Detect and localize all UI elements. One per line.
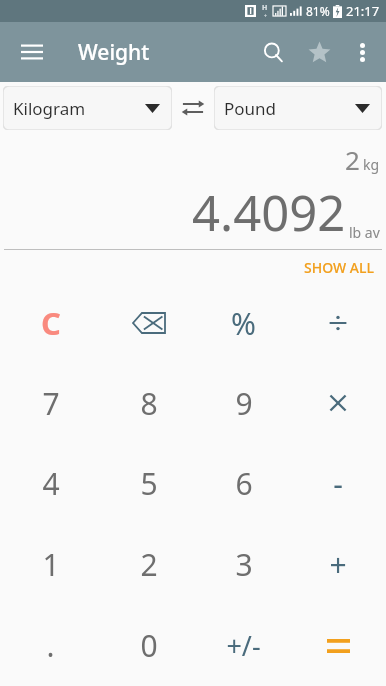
staticText: 1 bbox=[42, 544, 60, 585]
button[interactable]: 5 bbox=[101, 443, 197, 524]
button[interactable]: Open navigation menu bbox=[12, 32, 52, 72]
button[interactable]: + bbox=[290, 524, 386, 605]
button[interactable]: Multiply bbox=[290, 363, 386, 443]
staticText: + bbox=[329, 544, 347, 585]
staticText: . bbox=[46, 625, 55, 666]
button[interactable]: Equals bbox=[290, 605, 386, 686]
button[interactable]: % bbox=[197, 283, 290, 363]
button[interactable]: Backspace bbox=[101, 283, 197, 363]
staticText: 3 bbox=[235, 544, 253, 585]
button[interactable]: 0 bbox=[101, 605, 197, 686]
button[interactable]: 3 bbox=[197, 524, 290, 605]
staticText: 81% bbox=[306, 3, 330, 19]
staticText: + bbox=[264, 13, 267, 20]
staticText: 9 bbox=[235, 383, 253, 424]
staticText: 2 bbox=[345, 142, 360, 177]
button[interactable]: . bbox=[0, 605, 101, 686]
staticText: 0 bbox=[140, 625, 158, 666]
staticText: - bbox=[333, 463, 343, 504]
button[interactable]: Divide bbox=[290, 283, 386, 363]
staticText: lb av bbox=[349, 223, 380, 242]
staticText: +/- bbox=[226, 627, 261, 664]
button[interactable]: +/- bbox=[197, 605, 290, 686]
button[interactable]: 2 bbox=[101, 524, 197, 605]
staticText: 21:17 bbox=[346, 2, 380, 20]
button[interactable]: SHOW ALL bbox=[304, 258, 374, 277]
staticText: Pound bbox=[224, 97, 277, 120]
staticText: 2 bbox=[140, 544, 158, 585]
staticText: Weight bbox=[78, 38, 150, 67]
staticText: 8 bbox=[140, 383, 158, 424]
staticText: SHOW ALL bbox=[304, 258, 374, 277]
button[interactable]: Kilogram bbox=[3, 86, 172, 130]
staticText: 4.4092 bbox=[192, 179, 346, 246]
button[interactable]: 9 bbox=[197, 363, 290, 443]
button[interactable]: Pound bbox=[214, 86, 382, 130]
button[interactable]: More options bbox=[342, 32, 382, 72]
staticText: 5 bbox=[140, 463, 158, 504]
button[interactable]: 7 bbox=[0, 363, 101, 443]
staticText: 7 bbox=[42, 383, 60, 424]
button[interactable]: 6 bbox=[197, 443, 290, 524]
button[interactable]: 4 bbox=[0, 443, 101, 524]
staticText: C bbox=[41, 302, 61, 344]
staticText: 6 bbox=[235, 463, 253, 504]
staticText: Kilogram bbox=[13, 97, 86, 120]
staticText: % bbox=[231, 303, 256, 344]
staticText: H bbox=[262, 3, 268, 13]
button[interactable]: Swap units bbox=[172, 82, 214, 134]
button[interactable]: C bbox=[0, 283, 101, 363]
button[interactable]: 8 bbox=[101, 363, 197, 443]
button[interactable]: 1 bbox=[0, 524, 101, 605]
staticText: kg bbox=[363, 155, 380, 174]
button[interactable]: - bbox=[290, 443, 386, 524]
staticText: 4 bbox=[42, 463, 60, 504]
button[interactable]: Search bbox=[250, 29, 296, 75]
button[interactable]: Favorites bbox=[296, 29, 342, 75]
